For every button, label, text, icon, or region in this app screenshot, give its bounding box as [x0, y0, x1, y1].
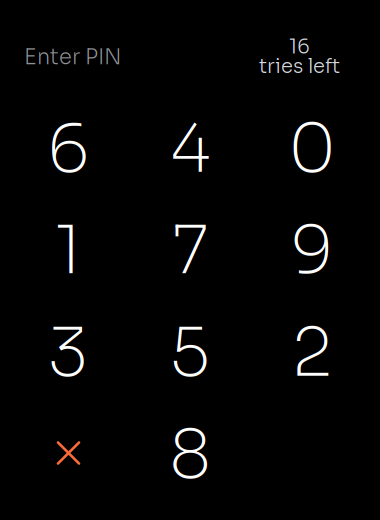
button[interactable]: 4 [129, 98, 251, 200]
button[interactable]: 3 [7, 302, 129, 404]
staticText: tries left [259, 57, 340, 76]
staticText: 2 [291, 311, 332, 395]
button[interactable]: 7 [129, 200, 251, 302]
button[interactable]: 1 [7, 200, 129, 302]
staticText: 0 [288, 107, 336, 191]
staticText: 9 [290, 209, 333, 293]
staticText: 8 [169, 413, 210, 497]
staticText: 4 [169, 107, 210, 191]
button[interactable]: 6 [7, 98, 129, 200]
button[interactable]: 9 [251, 200, 373, 302]
staticText: 5 [169, 311, 210, 395]
staticText: 6 [46, 107, 89, 191]
button[interactable]: 5 [129, 302, 251, 404]
button[interactable]: 0 [251, 98, 373, 200]
staticText: 3 [48, 311, 88, 395]
staticText: 7 [171, 209, 208, 293]
staticText: 16 [289, 37, 310, 57]
staticText: 1 [54, 209, 81, 293]
staticText: Enter PIN [24, 44, 122, 70]
button[interactable]: Delete [7, 404, 129, 506]
button[interactable]: 2 [251, 302, 373, 404]
button[interactable]: 8 [129, 404, 251, 506]
